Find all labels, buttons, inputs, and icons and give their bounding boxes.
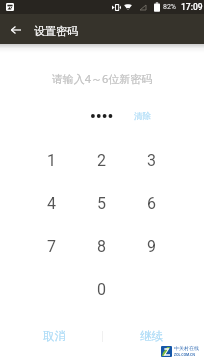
staticText: 中关村在线: [174, 345, 199, 351]
staticText: 2: [97, 151, 106, 170]
button[interactable]: 4: [26, 182, 76, 225]
button[interactable]: 8: [76, 225, 126, 268]
staticText: 4: [47, 194, 56, 213]
staticText: 17:09: [181, 2, 203, 12]
button[interactable]: Back: [0, 15, 31, 45]
button[interactable]: 继续: [103, 322, 200, 350]
staticText: 9: [147, 237, 156, 256]
button[interactable]: 7: [26, 225, 76, 268]
button[interactable]: 1: [26, 139, 76, 182]
button[interactable]: 0: [76, 268, 126, 311]
staticText: 取消: [43, 329, 66, 343]
staticText: 7: [47, 237, 56, 256]
button[interactable]: 5: [76, 182, 126, 225]
staticText: 1: [47, 151, 56, 170]
staticText: 0: [97, 280, 106, 299]
staticText: 设置密码: [34, 24, 78, 38]
staticText: 继续: [140, 329, 163, 343]
staticText: 8: [97, 237, 106, 256]
button[interactable]: 2: [76, 139, 126, 182]
staticText: 3: [147, 151, 156, 170]
button[interactable]: 6: [126, 182, 176, 225]
button[interactable]: 3: [126, 139, 176, 182]
staticText: 5: [97, 194, 106, 213]
staticText: 6: [147, 194, 156, 213]
button[interactable]: 取消: [6, 322, 102, 350]
staticText: 请输入4～6位新密码: [0, 71, 204, 86]
staticText: 82%: [163, 3, 176, 11]
button[interactable]: 9: [126, 225, 176, 268]
button[interactable]: 清除: [134, 111, 151, 122]
staticText: ZOL.COM.CN: [174, 352, 195, 357]
staticText: 清除: [134, 111, 151, 122]
